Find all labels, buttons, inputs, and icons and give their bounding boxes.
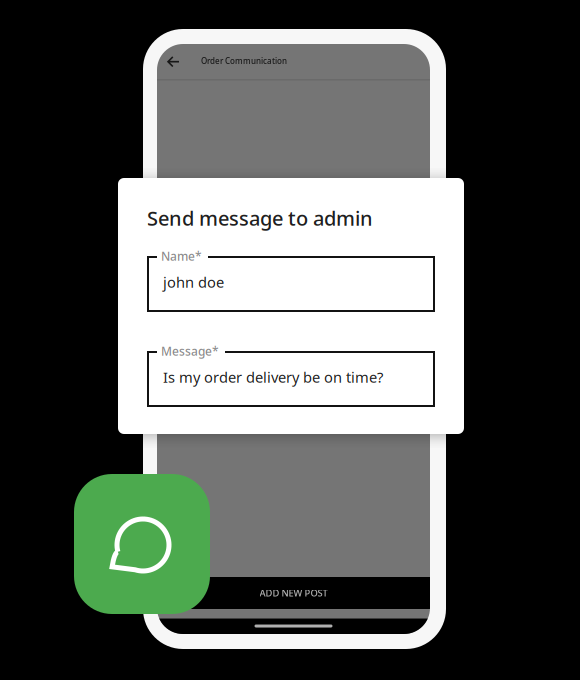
staticText: Send message to admin [147, 205, 373, 231]
button[interactable]: Message* [147, 351, 435, 407]
staticText: Message* [161, 343, 219, 359]
button[interactable]: Messages [0, 0, 580, 680]
button[interactable]: Back [157, 44, 430, 634]
button[interactable]: ADD NEW POST [157, 44, 430, 634]
staticText: Name* [161, 248, 202, 264]
button[interactable]: Name* [147, 256, 435, 312]
staticText: john doe [163, 272, 224, 292]
staticText: Is my order delivery be on time? [163, 367, 383, 387]
staticText: ADD NEW POST [259, 587, 327, 599]
staticText: Order Communication [201, 56, 287, 66]
